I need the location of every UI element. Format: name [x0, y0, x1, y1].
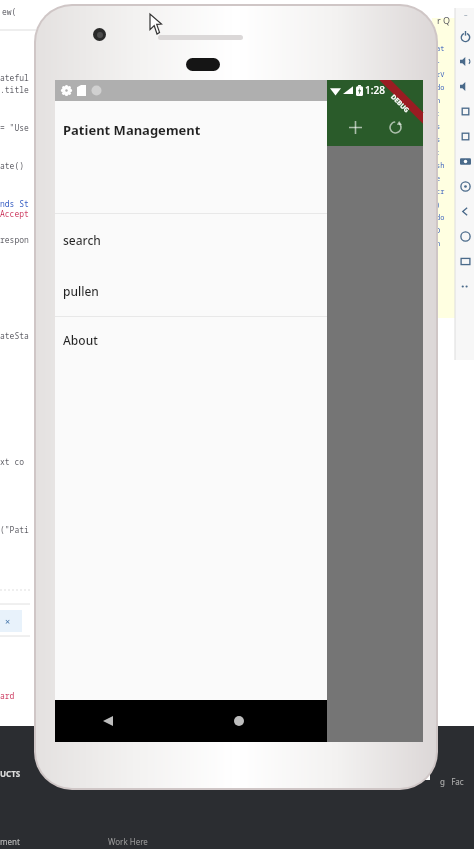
staticText: - [436, 57, 441, 67]
staticText: Work Here [108, 836, 148, 847]
button[interactable]: Emulator control 4 [457, 124, 474, 149]
staticText: n [436, 96, 441, 106]
staticText: D [436, 226, 441, 236]
button[interactable]: Emulator control 2 [457, 74, 474, 99]
staticText: g Fac [440, 776, 464, 787]
staticText: respon [0, 234, 29, 245]
button[interactable]: Emulator control 6 [457, 174, 474, 199]
staticText: .title [0, 84, 29, 95]
staticText: nds St [0, 198, 29, 209]
staticText: ateful [0, 72, 29, 83]
button[interactable]: search [55, 214, 423, 265]
staticText: ) [436, 200, 441, 210]
staticText: cr [436, 187, 445, 197]
staticText: do [436, 83, 445, 93]
staticText: : [436, 148, 441, 158]
staticText: xt co [0, 456, 24, 467]
button[interactable]: pullen [55, 265, 423, 316]
button[interactable]: Emulator control 10 [457, 274, 474, 299]
staticText: DEBUG [389, 92, 412, 115]
staticText: ("Pati [0, 524, 29, 535]
staticText: = "Use [0, 122, 29, 133]
button[interactable]: Home [224, 706, 254, 736]
staticText: × [5, 615, 11, 627]
button[interactable]: Emulator control 9 [457, 249, 474, 274]
staticText: ment [0, 836, 20, 847]
button[interactable]: Emulator control 1 [457, 49, 474, 74]
staticText: r Q [437, 14, 451, 26]
staticText: s [436, 135, 441, 145]
button[interactable]: Refresh [384, 116, 406, 138]
button[interactable]: Back [93, 706, 123, 736]
staticText: search [63, 232, 101, 248]
staticText: : [436, 109, 441, 119]
staticText: About [63, 332, 98, 348]
staticText: ard [0, 690, 15, 701]
staticText: s [436, 122, 441, 132]
staticText: at [436, 44, 445, 54]
staticText: ate() [0, 160, 24, 171]
button[interactable]: Emulator control 3 [457, 99, 474, 124]
button[interactable]: Emulator control 0 [457, 24, 474, 49]
staticText: rV [436, 70, 445, 80]
button[interactable]: Emulator control 5 [457, 149, 474, 174]
staticText: 1:28 [365, 83, 385, 97]
staticText: ateSta [0, 330, 29, 341]
staticText: Patient Management [63, 121, 201, 139]
button[interactable]: Add [344, 116, 366, 138]
staticText: pullen [63, 283, 99, 299]
button[interactable]: About [55, 317, 423, 362]
staticText: do [436, 213, 445, 223]
staticText: – [464, 10, 468, 20]
staticText: n [436, 239, 441, 249]
staticText: UCTS [0, 768, 21, 779]
staticText: ew( [2, 6, 17, 17]
staticText: Accept [0, 208, 29, 219]
staticText: sh [436, 161, 445, 171]
button[interactable]: Emulator control 7 [457, 199, 474, 224]
button[interactable]: Emulator control 8 [457, 224, 474, 249]
staticText: e [436, 174, 441, 184]
